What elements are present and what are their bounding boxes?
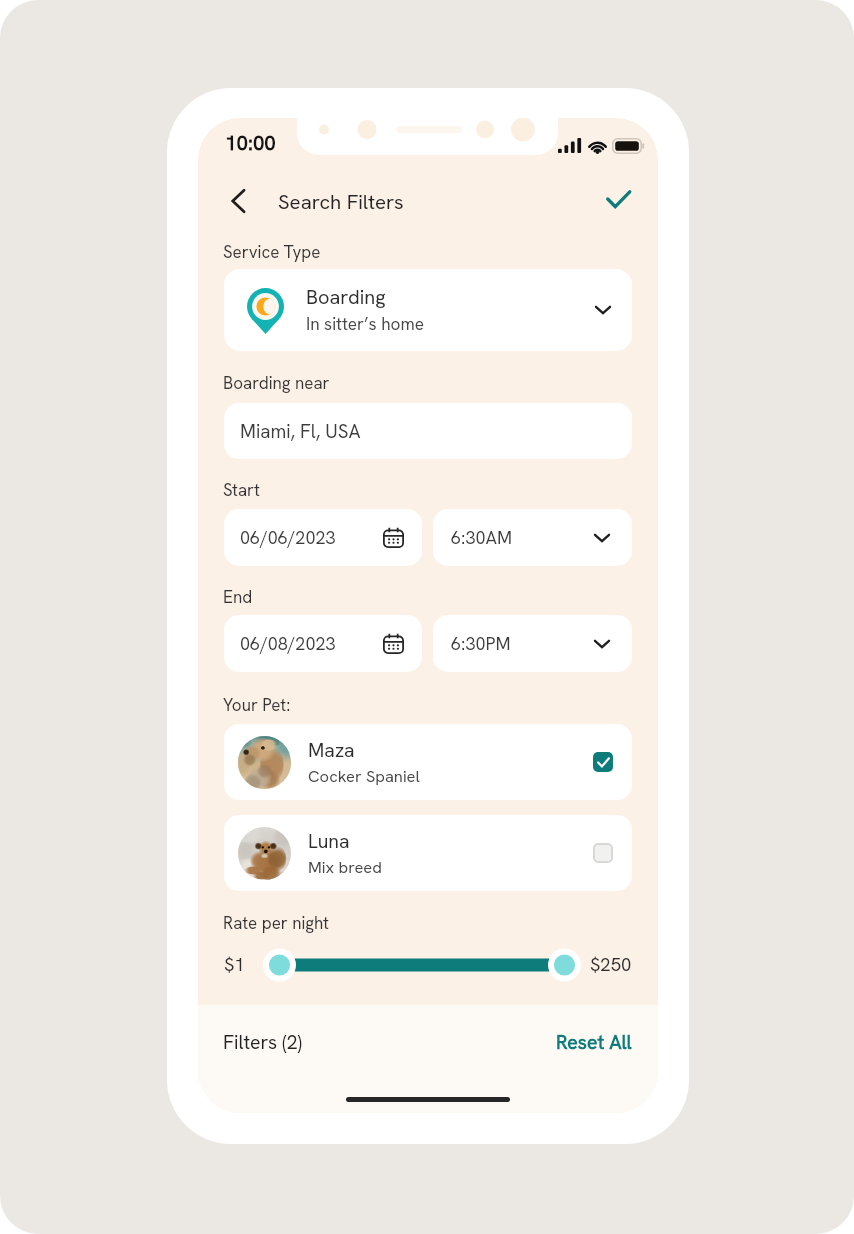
staticText: 6:30AM: [451, 526, 513, 549]
button[interactable]: Maza: [224, 724, 632, 800]
staticText: In sitter’s home: [306, 313, 424, 335]
button[interactable]: Luna: [224, 815, 632, 891]
staticText: Boarding near: [223, 372, 330, 394]
button[interactable]: Rate range slider: [263, 943, 581, 987]
staticText: Rate per night: [223, 912, 329, 934]
staticText: Maza: [308, 737, 355, 762]
staticText: Start: [223, 479, 260, 501]
button[interactable]: 6:30PM: [433, 615, 632, 672]
staticText: End: [223, 586, 253, 608]
staticText: 10:00: [225, 129, 276, 156]
button[interactable]: Select Luna: [593, 843, 613, 863]
staticText: Luna: [308, 828, 350, 853]
button[interactable]: 6:30AM: [433, 509, 632, 566]
button[interactable]: Reset All: [526, 1026, 632, 1056]
staticText: Boarding: [306, 284, 386, 310]
button[interactable]: 06/06/2023: [224, 509, 422, 566]
staticText: Your Pet:: [223, 694, 291, 716]
button[interactable]: Boarding: [224, 269, 632, 351]
staticText: Filters (2): [223, 1029, 302, 1054]
staticText: Miami, Fl, USA: [240, 419, 361, 444]
staticText: Reset All: [556, 1029, 632, 1054]
staticText: $250: [590, 952, 632, 976]
staticText: Service Type: [223, 241, 321, 263]
staticText: Cocker Spaniel: [308, 765, 420, 786]
staticText: 6:30PM: [451, 632, 511, 655]
button[interactable]: Apply filters: [596, 177, 640, 221]
staticText: $1: [224, 952, 245, 976]
button[interactable]: 06/08/2023: [224, 615, 422, 672]
button[interactable]: Select Maza: [593, 752, 613, 772]
staticText: 06/08/2023: [240, 632, 336, 655]
staticText: Mix breed: [308, 856, 382, 877]
button[interactable]: Back: [216, 179, 260, 223]
staticText: Search Filters: [278, 188, 404, 215]
staticText: 06/06/2023: [240, 526, 336, 549]
button[interactable]: Miami, Fl, USA: [224, 403, 632, 459]
button[interactable]: Search Filters: [278, 186, 404, 216]
button[interactable]: Filters (2): [223, 1026, 302, 1056]
